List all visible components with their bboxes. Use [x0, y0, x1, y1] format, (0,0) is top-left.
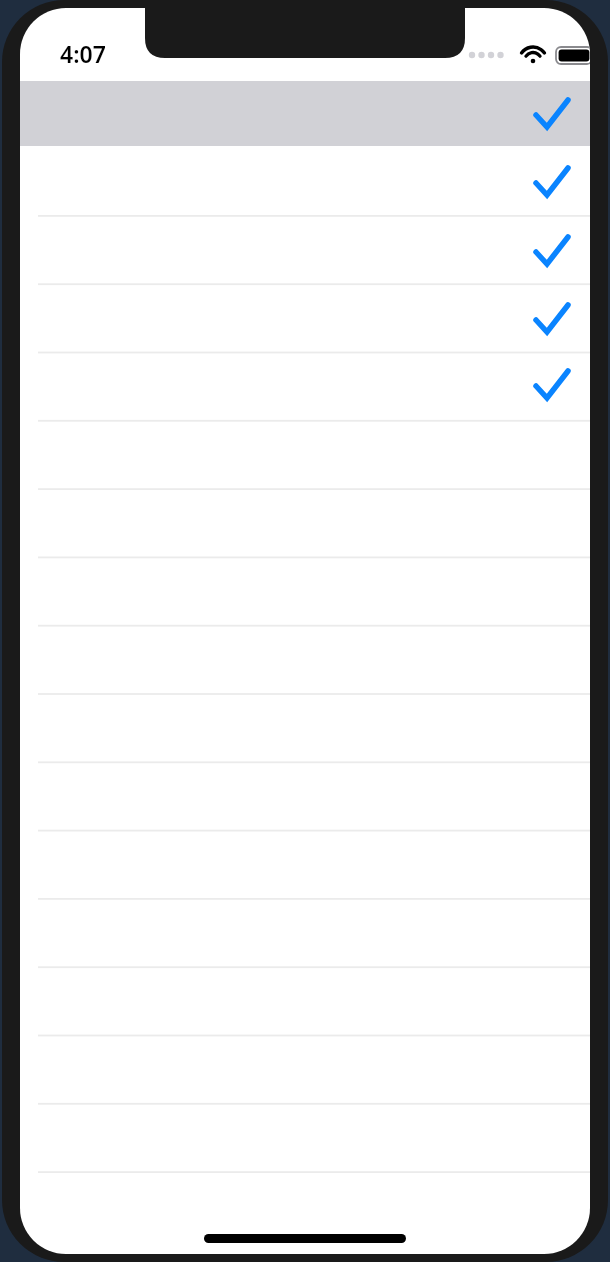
button[interactable]: Selected option 3	[520, 221, 590, 281]
button[interactable]: Selected option 2	[520, 152, 590, 212]
staticText: 4:07	[60, 38, 106, 69]
button[interactable]: Selected option 1	[520, 84, 590, 144]
button[interactable]: Selected option 4	[520, 289, 590, 349]
button[interactable]: Selected option 5	[520, 355, 590, 415]
